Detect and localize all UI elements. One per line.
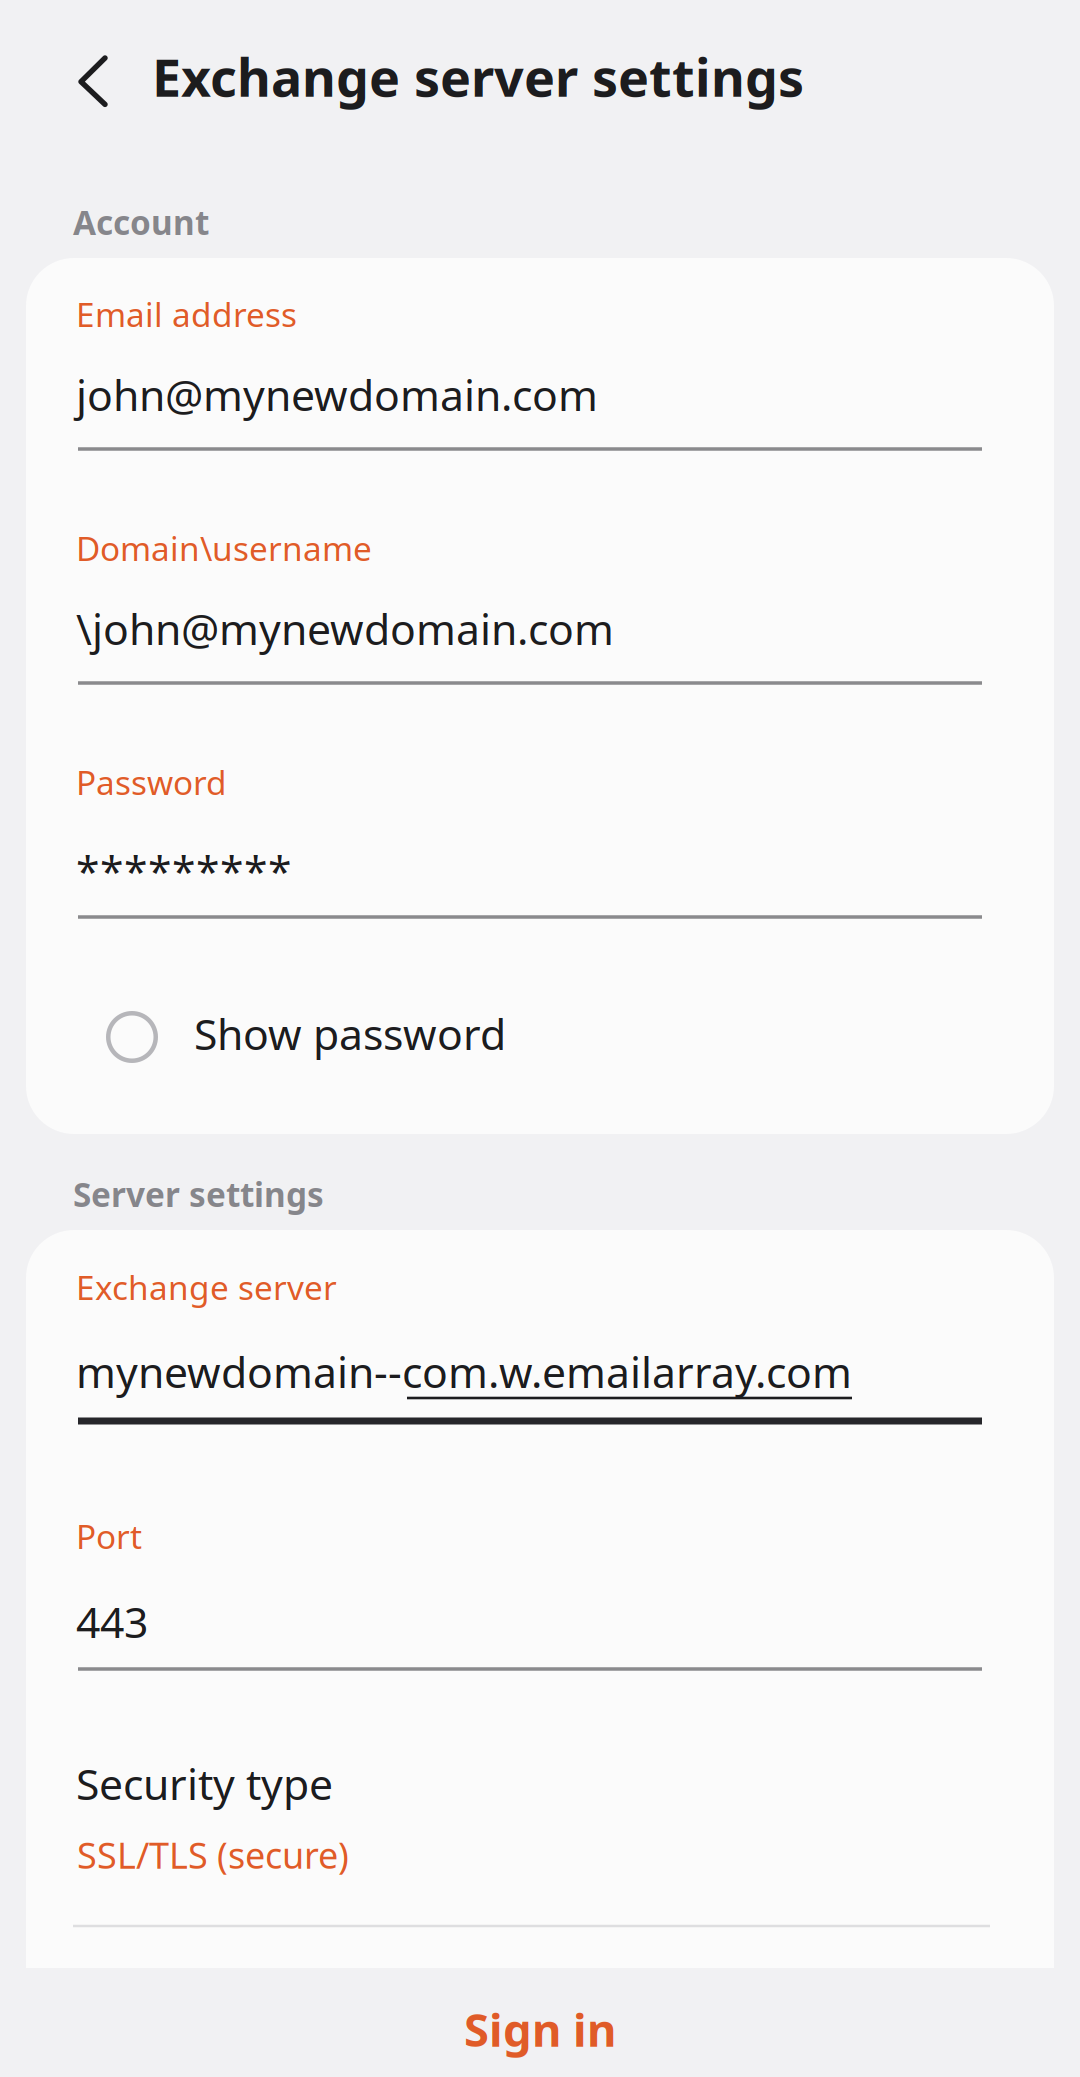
button[interactable]: Show password xyxy=(0,0,976,104)
staticText: Domain\username xyxy=(76,526,372,570)
button[interactable]: Sign in xyxy=(0,0,1080,109)
staticText: john@mynewdomain.com xyxy=(76,366,598,423)
button[interactable]: Domain\username xyxy=(0,0,904,186)
staticText: Account xyxy=(73,200,209,244)
staticText: Show password xyxy=(194,1005,506,1062)
staticText: Password xyxy=(76,760,227,804)
button[interactable]: Exchange server xyxy=(0,0,904,185)
staticText: Port xyxy=(76,1514,142,1558)
button[interactable]: Back xyxy=(0,0,96,96)
staticText: Security type xyxy=(76,1755,333,1812)
staticText: Exchange server settings xyxy=(152,42,804,111)
staticText: \john@mynewdomain.com xyxy=(76,600,614,657)
button[interactable]: Email address xyxy=(0,0,904,186)
staticText: Exchange server xyxy=(76,1265,337,1309)
staticText: ********* xyxy=(76,842,292,899)
staticText: SSL/TLS (secure) xyxy=(77,1831,349,1879)
staticText: mynewdomain--com.w.emailarray.com xyxy=(76,1343,852,1400)
staticText: Server settings xyxy=(73,1172,324,1216)
staticText: Email address xyxy=(76,292,297,336)
staticText: 443 xyxy=(76,1593,148,1650)
button[interactable]: Password xyxy=(0,0,904,186)
button[interactable]: Security type xyxy=(0,0,917,186)
staticText: Sign in xyxy=(464,1999,616,2059)
button[interactable]: Port xyxy=(0,0,904,184)
